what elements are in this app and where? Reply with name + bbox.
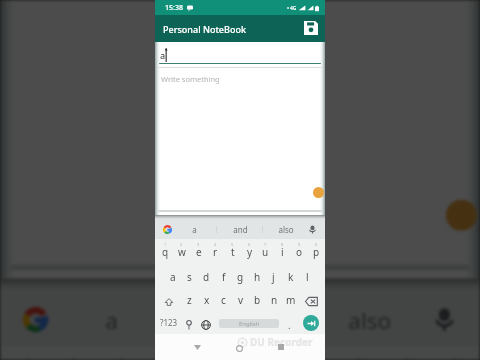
staticText: k	[288, 270, 294, 284]
staticText: v	[238, 293, 244, 307]
button[interactable]: Write something	[155, 68, 325, 241]
button[interactable]: f	[215, 264, 232, 286]
button[interactable]: Write something	[0, 0, 480, 352]
button[interactable]: and	[184, 284, 296, 352]
staticText: 9	[404, 355, 412, 360]
staticText: j	[272, 270, 275, 284]
button[interactable]: also	[266, 217, 306, 241]
button[interactable]: Screen recorder	[313, 187, 324, 198]
button[interactable]: Enter	[303, 315, 319, 331]
staticText: u	[262, 245, 269, 259]
button[interactable]: ?123	[160, 315, 180, 329]
button[interactable]: a	[155, 42, 325, 64]
button[interactable]: 9	[384, 346, 432, 360]
staticText: a	[160, 49, 166, 61]
button[interactable]: also	[313, 284, 426, 352]
button[interactable]: h	[249, 264, 266, 286]
button[interactable]: c	[215, 287, 232, 309]
button[interactable]: 7	[288, 346, 336, 360]
button[interactable]: Backspace	[303, 292, 320, 310]
button[interactable]: a	[164, 264, 181, 286]
button[interactable]: 4	[147, 346, 195, 360]
button[interactable]: Voice input	[418, 293, 468, 344]
button[interactable]: 4	[207, 239, 224, 261]
staticText: e	[196, 245, 202, 259]
staticText: 0	[451, 355, 460, 360]
staticText: i	[281, 245, 284, 259]
button[interactable]: Emoji	[180, 316, 197, 334]
staticText: 3	[197, 242, 200, 247]
staticText: y	[247, 245, 253, 259]
staticText: b	[254, 293, 261, 307]
staticText: h	[254, 270, 261, 284]
button[interactable]: Back	[188, 338, 206, 356]
staticText: w	[178, 245, 186, 259]
button[interactable]: Shift	[160, 293, 177, 311]
button[interactable]: g	[232, 264, 249, 286]
staticText: 7	[264, 242, 267, 247]
staticText: 4	[214, 242, 217, 247]
button[interactable]: 1	[157, 239, 174, 261]
staticText: English	[239, 320, 260, 328]
staticText: x	[204, 293, 210, 307]
staticText: ?123	[160, 317, 178, 328]
staticText: g	[237, 270, 244, 284]
staticText: 8	[281, 242, 284, 247]
button[interactable]: 8	[274, 239, 291, 261]
button[interactable]: 0	[308, 239, 325, 261]
button[interactable]: 3	[190, 239, 207, 261]
button[interactable]: k	[282, 264, 299, 286]
button[interactable]: Change language	[197, 316, 214, 334]
staticText: 1	[164, 242, 167, 247]
button[interactable]: Period	[281, 316, 298, 334]
button[interactable]: s	[181, 264, 198, 286]
button[interactable]: l	[299, 264, 316, 286]
button[interactable]: 5	[195, 346, 243, 360]
button[interactable]: d	[198, 264, 215, 286]
button[interactable]: Google	[6, 290, 62, 346]
button[interactable]: Recents	[272, 338, 290, 356]
staticText: 3	[119, 355, 127, 360]
button[interactable]: 6	[243, 346, 291, 360]
button[interactable]: 5	[224, 239, 241, 261]
button[interactable]: a	[174, 217, 214, 241]
staticText: p	[313, 245, 320, 259]
staticText: r	[213, 245, 218, 259]
button[interactable]: b	[249, 287, 266, 309]
button[interactable]: Home	[230, 339, 248, 357]
staticText: a	[105, 304, 119, 335]
button[interactable]: 8	[336, 346, 384, 360]
button[interactable]: 1	[6, 346, 54, 360]
button[interactable]: v	[232, 287, 249, 309]
button[interactable]: z	[181, 287, 198, 309]
button[interactable]: a	[54, 284, 167, 352]
button[interactable]: Personal NoteBook	[155, 15, 325, 42]
button[interactable]: Screen recorder	[446, 200, 477, 231]
button[interactable]: 7	[257, 239, 274, 261]
button[interactable]: 6	[241, 239, 258, 261]
button[interactable]: Google	[157, 219, 177, 239]
staticText: also	[347, 304, 392, 335]
button[interactable]: n	[266, 287, 283, 309]
button[interactable]: 9	[291, 239, 308, 261]
staticText: 15:38	[165, 3, 183, 13]
button[interactable]: 0	[432, 346, 480, 360]
button[interactable]: m	[282, 287, 299, 309]
button[interactable]: Save note	[301, 18, 321, 38]
staticText: Personal NoteBook	[163, 23, 246, 35]
staticText: c	[221, 293, 226, 307]
button[interactable]: Voice input	[303, 220, 321, 238]
staticText: q	[162, 245, 169, 259]
button[interactable]: English	[219, 319, 279, 328]
button[interactable]: j	[265, 264, 282, 286]
staticText: n	[271, 293, 278, 307]
staticText: 2	[71, 355, 79, 360]
button[interactable]: x	[198, 287, 215, 309]
button[interactable]: 2	[173, 239, 190, 261]
button[interactable]: 2	[51, 346, 99, 360]
button[interactable]: and	[220, 217, 260, 241]
button[interactable]: 3	[99, 346, 147, 360]
staticText: d	[203, 270, 210, 284]
